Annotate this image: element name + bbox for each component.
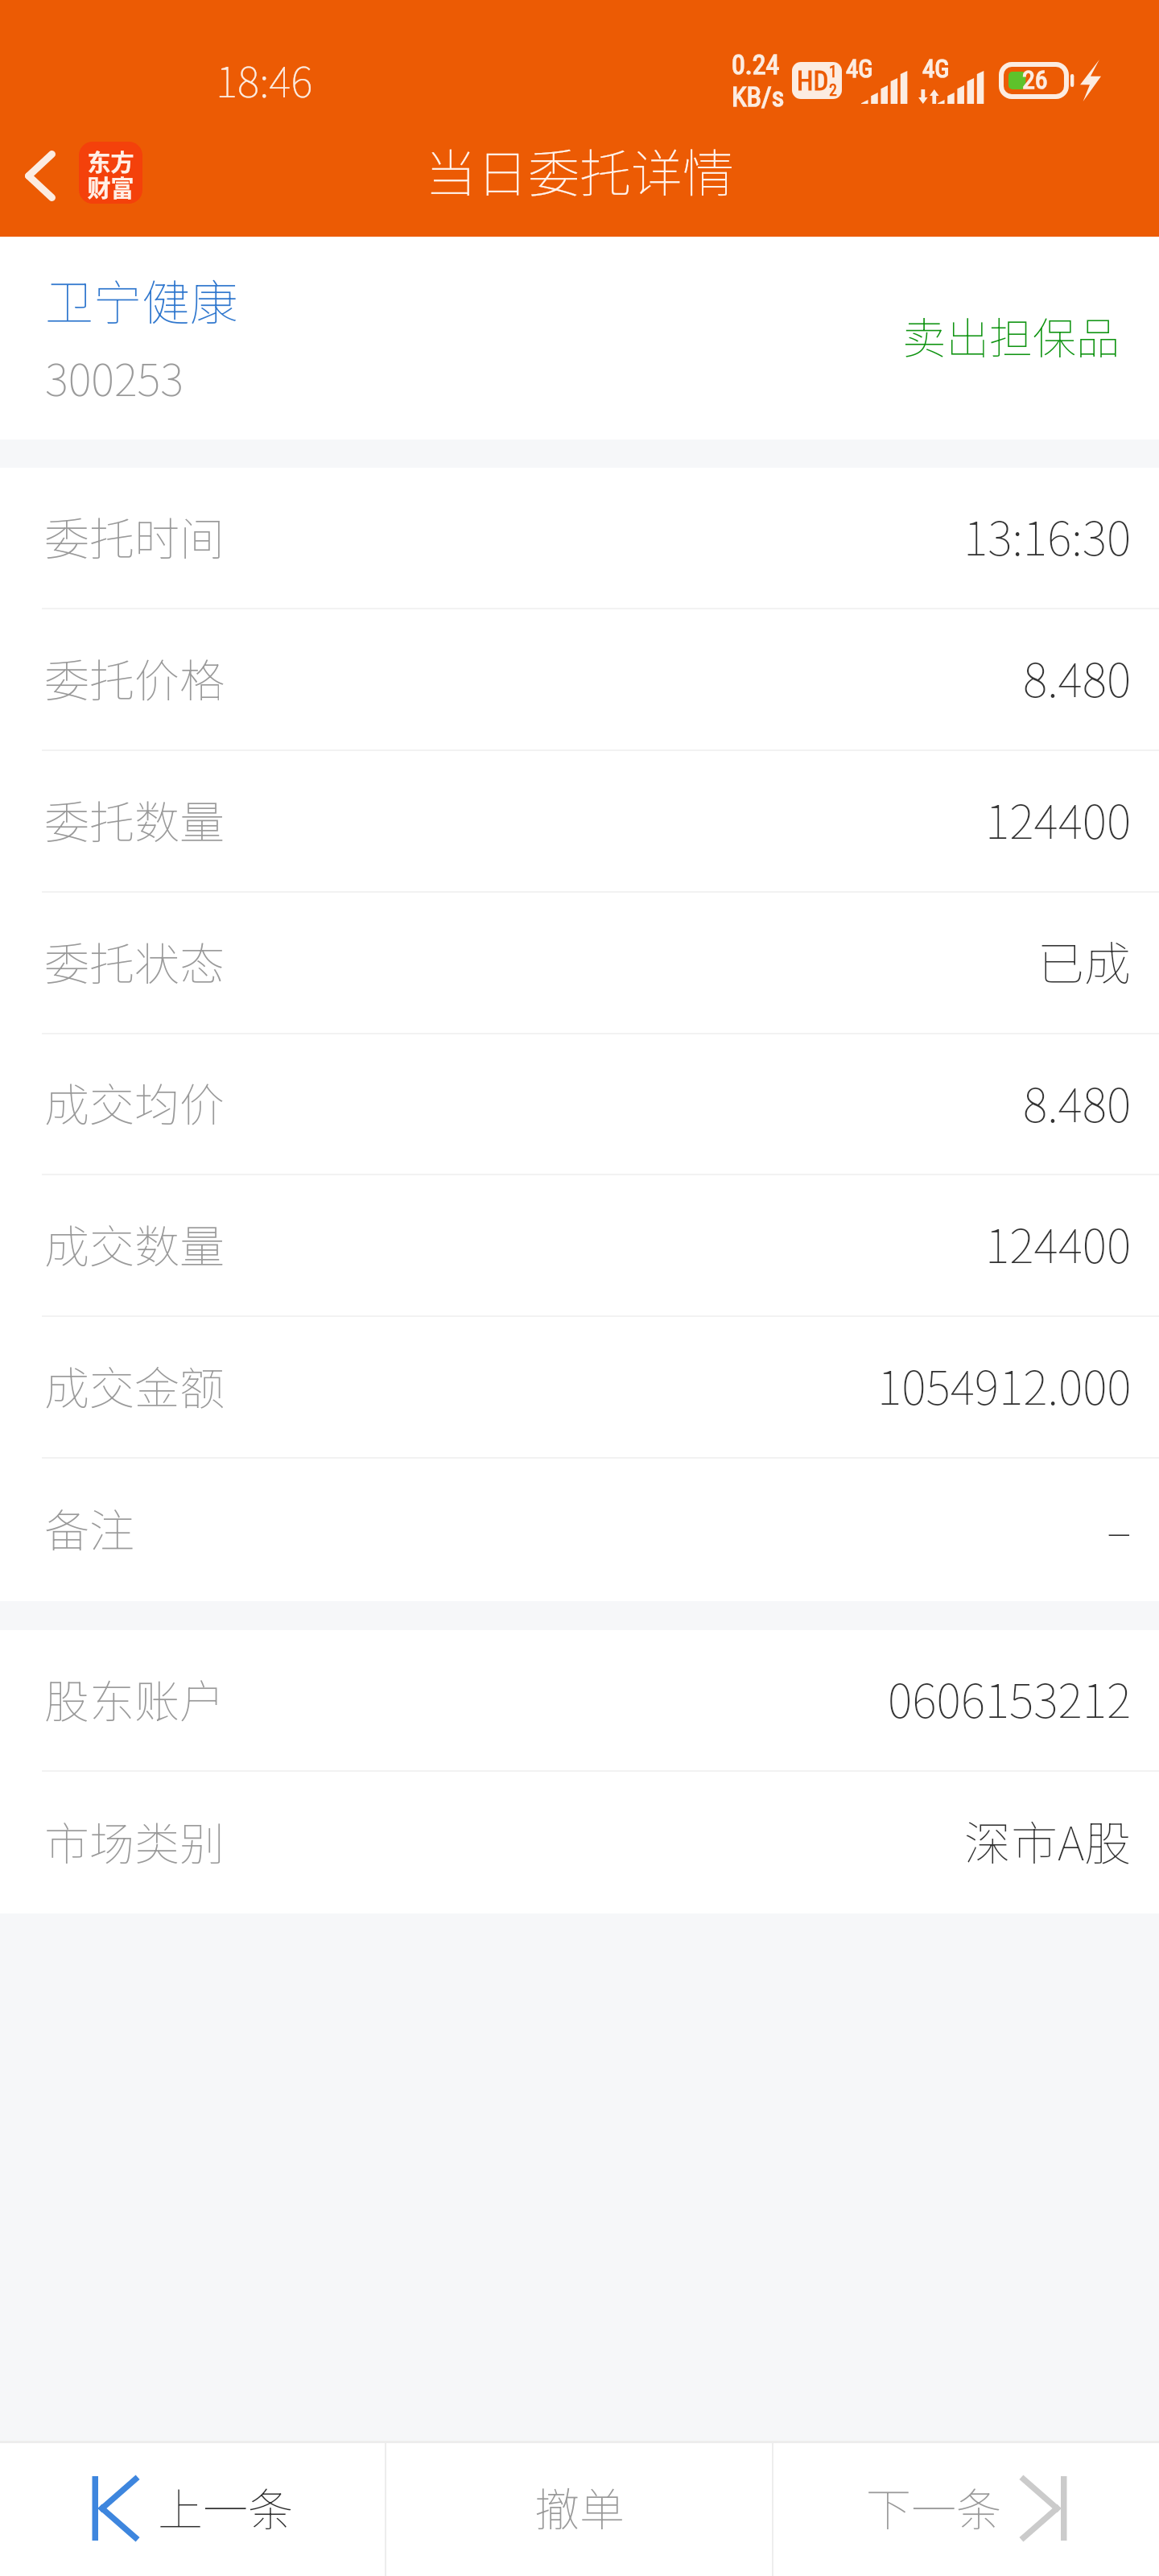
staticText: 成交均价 — [44, 1069, 225, 1134]
button[interactable]: 撤单 — [386, 2443, 772, 2576]
staticText: HD — [797, 65, 829, 97]
staticText: 26 — [1022, 64, 1048, 95]
staticText: 1 — [829, 62, 837, 80]
staticText: 0.24 — [732, 48, 780, 80]
staticText: 8.480 — [1023, 1068, 1132, 1136]
button[interactable]: 委托价格 — [0, 609, 1159, 749]
staticText: 下一条 — [866, 2474, 1001, 2539]
button[interactable]: 备注 — [0, 1459, 1159, 1601]
staticText: 委托时间 — [44, 503, 225, 568]
staticText: 委托数量 — [44, 786, 225, 852]
button[interactable]: 成交金额 — [0, 1317, 1159, 1457]
button[interactable]: Back — [3, 126, 77, 225]
staticText: KB/s — [732, 80, 785, 113]
staticText: 备注 — [44, 1495, 134, 1560]
staticText: 2 — [829, 80, 837, 99]
staticText: 委托状态 — [44, 928, 225, 993]
staticText: 撤单 — [534, 2474, 625, 2539]
button[interactable]: 卫宁健康 — [0, 237, 1159, 440]
staticText: 当日委托详情 — [425, 133, 734, 208]
button[interactable]: 股东账户 — [0, 1630, 1159, 1770]
staticText: 深市A股 — [964, 1806, 1132, 1874]
staticText: 成交数量 — [44, 1211, 225, 1276]
staticText: 卫宁健康 — [45, 264, 238, 334]
button[interactable]: 委托状态 — [0, 893, 1159, 1033]
button[interactable]: 市场类别 — [0, 1772, 1159, 1913]
staticText: 东方 财富 — [87, 144, 134, 204]
staticText: 已成 — [1037, 927, 1132, 994]
staticText: 1054912.000 — [877, 1351, 1132, 1418]
staticText: 13:16:30 — [963, 502, 1132, 569]
staticText: 124400 — [985, 785, 1132, 852]
staticText: 卖出担保品 — [902, 303, 1120, 366]
staticText: 124400 — [985, 1209, 1132, 1277]
button[interactable]: 下一条 — [773, 2443, 1159, 2576]
staticText: 300253 — [45, 345, 184, 409]
button[interactable]: 委托数量 — [0, 751, 1159, 891]
staticText: 股东账户 — [44, 1666, 225, 1731]
staticText: 0606153212 — [888, 1664, 1132, 1732]
staticText: 上一条 — [158, 2474, 293, 2539]
staticText: 市场类别 — [44, 1808, 225, 1873]
button[interactable]: 成交均价 — [0, 1034, 1159, 1174]
staticText: 成交金额 — [44, 1352, 225, 1418]
staticText: 4G — [846, 54, 873, 83]
button[interactable]: 成交数量 — [0, 1175, 1159, 1315]
staticText: 委托价格 — [44, 645, 225, 710]
staticText: 8.480 — [1023, 643, 1132, 711]
button[interactable]: 委托时间 — [0, 468, 1159, 608]
staticText: 4G — [922, 54, 950, 83]
button[interactable]: 上一条 — [0, 2443, 385, 2576]
staticText: – — [1107, 1494, 1132, 1562]
button[interactable]: East Money logo — [79, 142, 142, 204]
staticText: 18:46 — [216, 49, 313, 109]
